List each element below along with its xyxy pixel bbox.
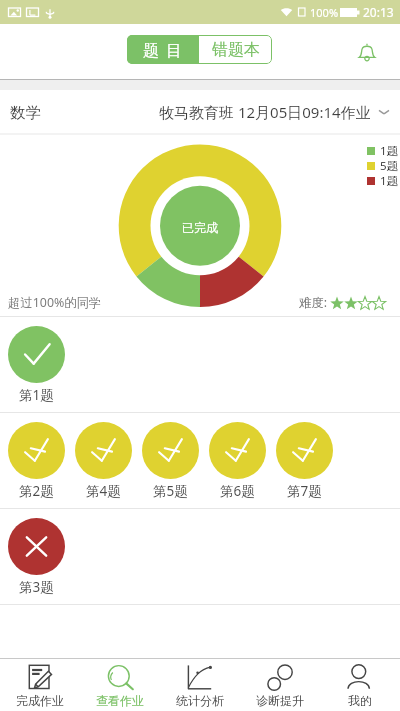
button[interactable]: 题 目 — [127, 35, 199, 64]
staticText: 查看作业 — [96, 693, 144, 708]
staticText: 第3题 — [19, 578, 54, 596]
button[interactable]: 第6题 — [209, 413, 276, 500]
staticText: 100% — [310, 5, 339, 20]
staticText: 统计分析 — [176, 693, 224, 708]
staticText: 数学 — [10, 103, 41, 123]
staticText: 第2题 — [19, 482, 54, 500]
button[interactable]: 数学 — [0, 90, 400, 133]
button[interactable]: 查看作业 — [80, 659, 160, 711]
staticText: 第5题 — [153, 482, 188, 500]
staticText: 牧马教育班 12月05日09:14作业 — [159, 102, 371, 122]
staticText: 第1题 — [19, 386, 54, 404]
staticText: 1题 — [380, 143, 399, 158]
staticText: 1题 — [380, 173, 399, 188]
button[interactable]: 第1题 — [8, 317, 75, 404]
staticText: 5题 — [380, 158, 399, 173]
button[interactable]: 我的 — [320, 659, 400, 711]
staticText: 超过100%的同学 — [8, 294, 102, 311]
staticText: 完成作业 — [16, 693, 64, 708]
staticText: 第7题 — [287, 482, 322, 500]
button[interactable]: 错题本 — [199, 35, 272, 64]
button[interactable]: 完成作业 — [0, 659, 80, 711]
staticText: 第4题 — [86, 482, 121, 500]
staticText: 20:13 — [363, 4, 394, 20]
staticText: 诊断提升 — [256, 693, 304, 708]
button[interactable]: 第7题 — [276, 413, 343, 500]
staticText: 已完成 — [182, 220, 218, 235]
button[interactable]: Notifications — [350, 35, 384, 69]
staticText: 错题本 — [212, 40, 260, 60]
staticText: 第6题 — [220, 482, 255, 500]
staticText: 题 目 — [143, 39, 184, 61]
button[interactable]: 第2题 — [8, 413, 75, 500]
button[interactable]: 第4题 — [75, 413, 142, 500]
button[interactable]: 第5题 — [142, 413, 209, 500]
button[interactable]: 诊断提升 — [240, 659, 320, 711]
staticText: 我的 — [348, 693, 372, 708]
staticText: 难度: — [299, 294, 328, 311]
button[interactable]: 统计分析 — [160, 659, 240, 711]
button[interactable]: 第3题 — [8, 509, 75, 596]
